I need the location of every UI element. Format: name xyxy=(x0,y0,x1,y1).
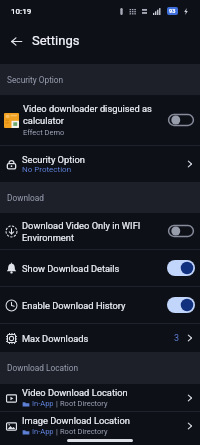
button[interactable]: Video Download Location xyxy=(0,384,200,411)
button[interactable]: Enable Download History xyxy=(0,287,200,323)
staticText: Enable Download History xyxy=(22,300,163,311)
button[interactable]: Switch on xyxy=(167,297,195,313)
staticText: Settings xyxy=(32,33,80,48)
staticText: Effect Demo xyxy=(23,128,65,137)
staticText: No Protection xyxy=(22,165,72,174)
staticText: Root Directory xyxy=(60,427,108,436)
button[interactable]: Switch off xyxy=(167,223,195,239)
button[interactable]: Show Download Details xyxy=(0,250,200,286)
staticText: 93 xyxy=(169,8,176,14)
staticText: In-App xyxy=(32,427,54,436)
staticText: Download Video Only in WIFI Environment xyxy=(22,220,163,243)
staticText: Max Downloads xyxy=(22,333,174,344)
button[interactable]: Security Option xyxy=(0,146,200,182)
staticText: Video Download Location xyxy=(22,387,128,398)
button[interactable]: Switch on xyxy=(167,260,195,276)
staticText: 3 xyxy=(174,333,180,344)
staticText: Image Download Location xyxy=(22,415,130,426)
staticText: Video downloader disguised as calculator xyxy=(23,103,163,126)
button[interactable]: Back xyxy=(6,31,26,51)
staticText: Root Directory xyxy=(60,399,108,408)
button[interactable]: Image Download Location xyxy=(0,412,200,439)
staticText: In-App xyxy=(32,399,54,408)
button[interactable]: Video downloader disguised as calculator xyxy=(0,95,200,145)
staticText: 10:19 xyxy=(11,7,32,16)
staticText: | xyxy=(56,399,58,408)
staticText: Download Location xyxy=(7,363,79,373)
staticText: Show Download Details xyxy=(22,263,163,274)
staticText: Security Option xyxy=(7,75,64,85)
button[interactable]: Switch off xyxy=(167,112,195,128)
staticText: | xyxy=(56,427,58,436)
staticText: Download xyxy=(7,193,44,203)
button[interactable]: Max Downloads xyxy=(0,324,200,352)
staticText: Security Option xyxy=(22,154,85,165)
button[interactable]: Download Video Only in WIFI Environment xyxy=(0,213,200,249)
